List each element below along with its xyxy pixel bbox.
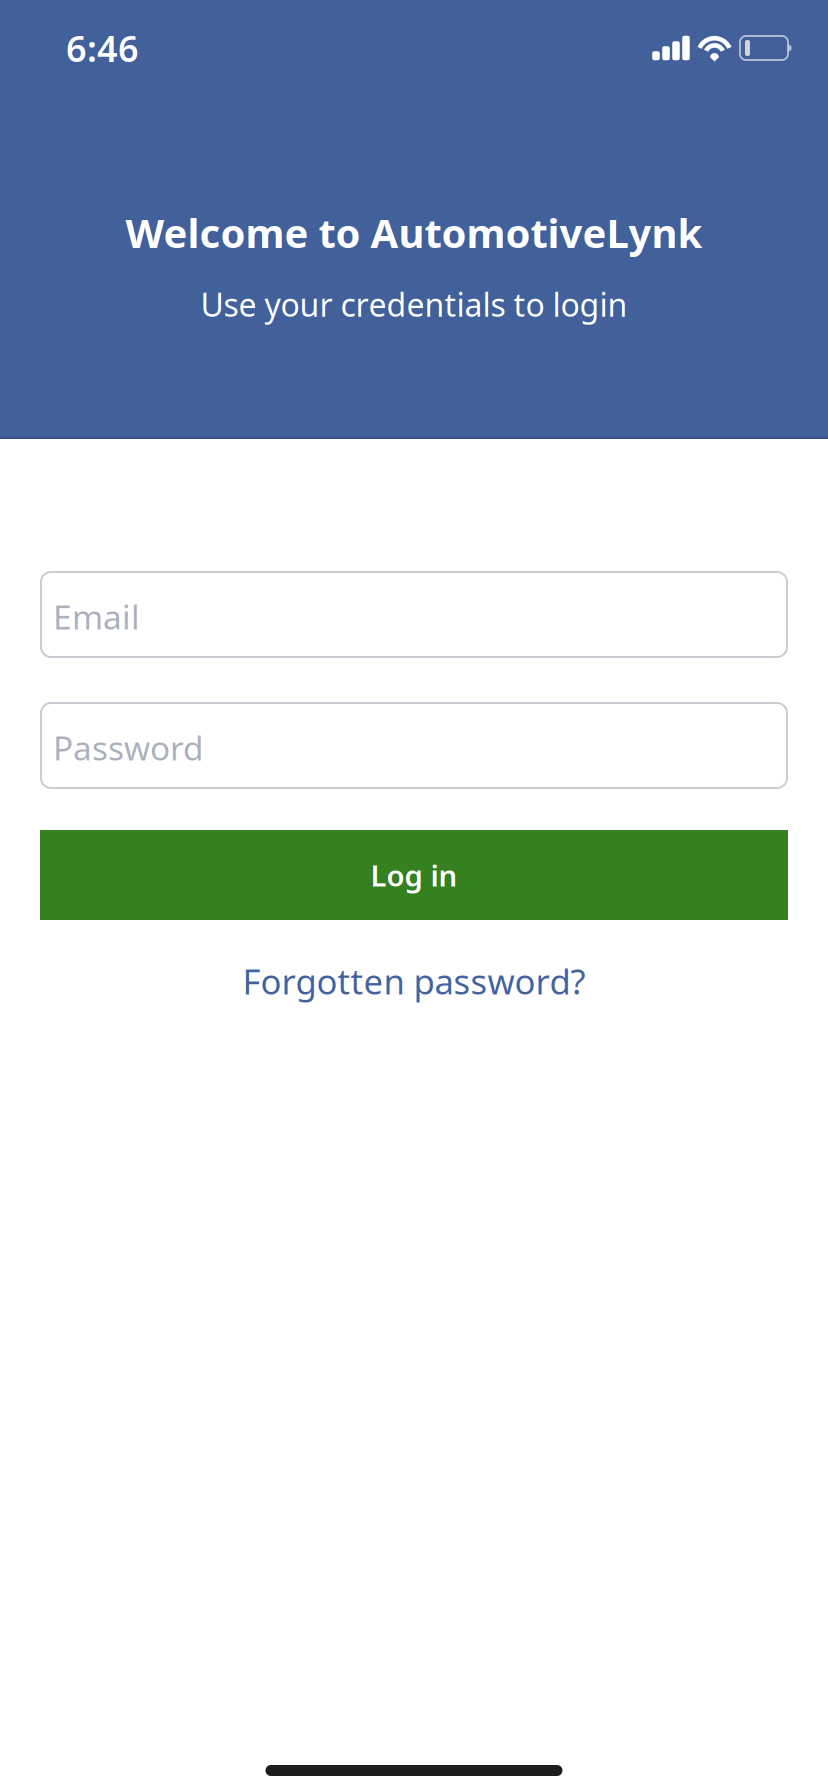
button[interactable]: Forgotten password? (242, 958, 585, 1004)
staticText: 6:46 (66, 24, 139, 72)
staticText: Forgotten password? (242, 958, 585, 1004)
button[interactable]: Email (40, 571, 788, 658)
button[interactable]: Password (40, 702, 788, 789)
staticText: Log in (370, 855, 457, 894)
staticText: Password (53, 725, 204, 770)
staticText: Welcome to AutomotiveLynk (125, 206, 702, 259)
staticText: Use your credentials to login (200, 283, 627, 326)
button[interactable]: Log in (40, 830, 788, 920)
staticText: Email (53, 594, 140, 639)
